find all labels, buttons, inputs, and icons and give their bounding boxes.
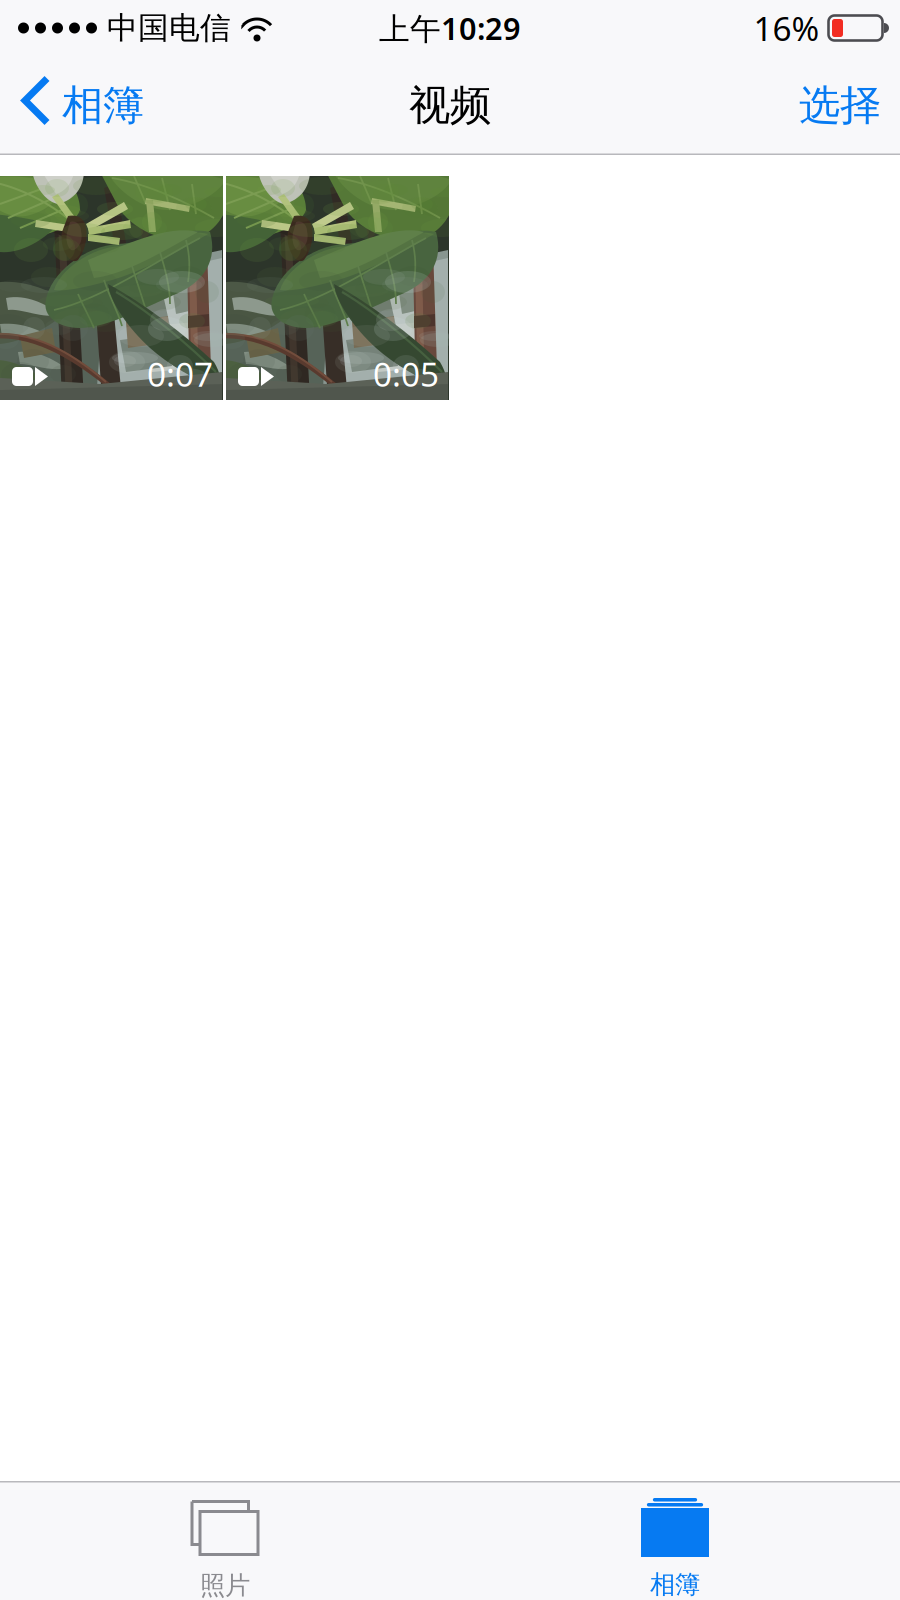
button[interactable]: 相簿 (6, 66, 162, 145)
staticText: 相簿 (650, 1569, 700, 1600)
staticText: 0:05 (373, 352, 439, 396)
staticText: 相簿 (62, 80, 144, 131)
staticText: 视频 (409, 80, 491, 131)
staticText: 照片 (200, 1570, 250, 1600)
staticText: 0:07 (147, 352, 213, 396)
staticText: 选择 (799, 80, 881, 131)
staticText: 中国电信 (107, 9, 231, 47)
staticText: 16% (753, 6, 819, 50)
button[interactable]: 选择 (779, 66, 894, 145)
staticText: 上午10:29 (379, 8, 521, 48)
button[interactable]: Video 0:07 (0, 176, 223, 400)
button[interactable]: 照片 (0, 1481, 450, 1600)
button[interactable]: Video 0:05 (226, 176, 449, 400)
button[interactable]: 相簿 (450, 1481, 900, 1600)
